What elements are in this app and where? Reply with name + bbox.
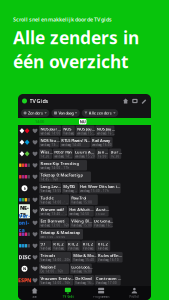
button[interactable]: Mike & Molly: [72, 252, 96, 262]
button[interactable]: Eet Bornwsti: [39, 218, 69, 228]
staticText: De Kleed: [75, 276, 92, 281]
button[interactable]: Teketop 0: MacFastigp: [39, 172, 91, 182]
button[interactable]: Rail Away: [91, 137, 113, 147]
staticText: 15:40: [96, 212, 105, 216]
staticText: Eet Bornwsti: [40, 218, 65, 224]
button[interactable]: Rules of Engagement: [97, 252, 123, 262]
button[interactable]: Home: [123, 98, 128, 103]
staticText: Wissie ze: [40, 149, 52, 155]
button[interactable]: Programma's: [84, 286, 118, 300]
button[interactable]: Wissie ze: [39, 149, 52, 159]
button[interactable]: RTL 2: [52, 241, 66, 251]
staticText: Reece Kip Trending: [40, 161, 79, 166]
staticText: Peter Pan: [54, 149, 72, 155]
staticText: één overzicht: [13, 50, 129, 73]
button[interactable]: Vandaag: [51, 109, 80, 117]
staticText: Ma 01:50 - 05:00: [40, 235, 65, 239]
staticText: RTL 2: [53, 241, 63, 247]
staticText: vandaag 15:20: [75, 155, 95, 158]
staticText: vandaag 13:45: [40, 143, 59, 147]
button[interactable]: Cast: [132, 99, 138, 103]
button[interactable]: De Genade: [93, 218, 113, 228]
staticText: Tekatop & Madastap: [40, 230, 80, 235]
button[interactable]: Luurs Automold: [74, 149, 96, 159]
button[interactable]: RTL 2: [67, 241, 81, 251]
staticText: vandaag 14:00: [40, 132, 60, 135]
button[interactable]: Tudde: [39, 195, 69, 205]
button[interactable]: NOS: [62, 125, 75, 136]
staticText: DISC: [18, 254, 30, 261]
staticText: 6: [23, 186, 25, 191]
staticText: NU: [80, 119, 86, 124]
staticText: vandaag 16:00: [92, 143, 112, 147]
staticText: Programma's: [93, 295, 109, 298]
staticText: Vandaag 14:00 - 16h: [40, 281, 70, 285]
button[interactable]: Instellingen: [142, 98, 147, 104]
button[interactable]: Het Afsluitwereld: [68, 206, 94, 216]
button[interactable]: NOS Studio: [39, 137, 59, 147]
staticText: Start: [32, 295, 37, 298]
staticText: Alle zenders in: [13, 26, 139, 49]
staticText: Vandaag: [40, 247, 51, 250]
button[interactable]: Jungle: [96, 149, 108, 159]
staticText: TV Gids: [62, 295, 73, 298]
staticText: vandaag 13:40 - 15h: [40, 212, 67, 216]
staticText: Viking Bloed: [71, 218, 92, 224]
staticText: Vandaag 16:20: [94, 224, 113, 227]
button[interactable]: Burntbla: [109, 149, 121, 159]
button[interactable]: 9.1: [39, 241, 51, 251]
button[interactable]: RTL 2: [96, 241, 110, 251]
button[interactable]: Nazioné: [39, 264, 69, 274]
staticText: 16:30: [111, 155, 120, 158]
button[interactable]: Contracen highlights: [95, 275, 121, 285]
button[interactable]: Luca Locaas: [70, 264, 92, 274]
staticText: Vandaag: [98, 247, 109, 250]
button[interactable]: NOS Journaal: [39, 125, 61, 136]
staticText: RTL 2: [83, 241, 93, 247]
staticText: RTL 2: [68, 241, 78, 247]
button[interactable]: Profiel: [118, 286, 151, 300]
staticText: N: [23, 266, 26, 271]
staticText: 9.1: [40, 241, 45, 247]
staticText: Scroll snel en makkelijk door de TV gids: [13, 16, 112, 23]
staticText: Vandaag: [58, 110, 73, 116]
staticText: Teketop 0: MacFastigp: [40, 172, 83, 178]
staticText: MyTIG: [63, 184, 75, 189]
staticText: Profiel: [129, 295, 139, 298]
button[interactable]: TV Gids: [51, 286, 84, 300]
staticText: Paw-Trol: [71, 195, 86, 201]
button[interactable]: Zenders: [21, 109, 49, 117]
staticText: Nazioné: [40, 264, 55, 270]
staticText: Vandaag: [68, 247, 79, 250]
button[interactable]: Peter Pan: [53, 149, 73, 159]
button[interactable]: NOS Journaal: [95, 125, 114, 136]
button[interactable]: RTL5 Plaats! Nogelijk: [60, 137, 90, 147]
staticText: Vandaag 14:45: [63, 189, 78, 193]
staticText: Vandaag: [63, 132, 74, 135]
button[interactable]: Trinods: [39, 252, 71, 262]
staticText: Warwm ook?: [40, 207, 64, 212]
staticText: Rail Away: [92, 138, 110, 143]
button[interactable]: Alle zenders: [82, 109, 118, 117]
button[interactable]: MyTIG: [62, 183, 78, 193]
button[interactable]: Reece Kip Trending: [39, 160, 87, 170]
button[interactable]: Start: [18, 286, 51, 300]
staticText: Het Afsluitwereld: [69, 207, 94, 212]
staticText: TV Gids: [30, 97, 49, 105]
staticText: vandaag 15:00: [77, 132, 95, 135]
button[interactable]: NOS Journaal: [76, 125, 95, 136]
button[interactable]: Vrouwen Eredivisie: [39, 275, 73, 285]
button[interactable]: RTL 2: [81, 241, 95, 251]
button[interactable]: De Kleed: [74, 275, 94, 285]
button[interactable]: Paw-Trol: [70, 195, 98, 205]
staticText: vandaag 14:40: [61, 143, 81, 147]
button[interactable]: Warwm ook?: [39, 206, 67, 216]
button[interactable]: Viking Bloed: [70, 218, 92, 228]
button[interactable]: Tekatop & Madastap: [39, 229, 83, 239]
button[interactable]: Het Weer Dits kan is het nu wel?: [79, 183, 121, 193]
staticText: Vandaag: [83, 247, 94, 250]
staticText: Vandaag 13:55: [40, 189, 61, 193]
button[interactable]: Australië: [95, 206, 109, 216]
staticText: Vandaag 14:00 - 20h: [40, 258, 70, 262]
button[interactable]: Lang-Leve de: [39, 183, 61, 193]
